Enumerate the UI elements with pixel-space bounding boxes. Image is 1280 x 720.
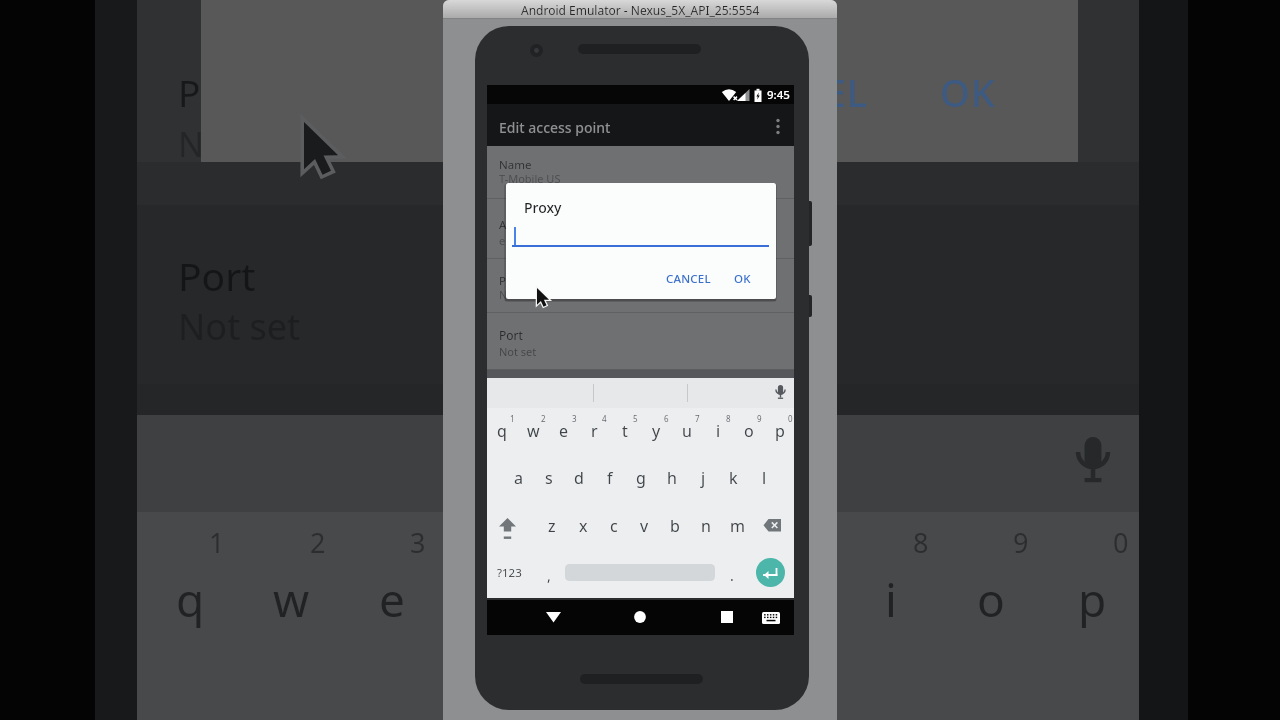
button[interactable] bbox=[545, 610, 562, 625]
staticText: 2 bbox=[541, 413, 546, 424]
staticText: z bbox=[548, 515, 556, 537]
staticText: q bbox=[176, 568, 205, 628]
staticText: CANCEL bbox=[718, 66, 869, 118]
staticText: 5 bbox=[633, 413, 638, 424]
staticText: w bbox=[527, 420, 540, 442]
button[interactable]: f bbox=[595, 461, 625, 495]
button[interactable]: t bbox=[610, 414, 640, 448]
staticText: 8 bbox=[913, 524, 929, 561]
button[interactable]: ?123 bbox=[489, 558, 529, 588]
staticText: 0 bbox=[788, 413, 793, 424]
button[interactable]: u bbox=[672, 414, 702, 448]
staticText: e bbox=[379, 568, 405, 628]
staticText: 9 bbox=[757, 413, 762, 424]
staticText: q bbox=[497, 420, 507, 442]
staticText: 1 bbox=[510, 413, 515, 424]
staticText: 8 bbox=[726, 413, 731, 424]
staticText: Not set bbox=[499, 287, 537, 302]
staticText: p bbox=[775, 420, 785, 442]
staticText: i bbox=[885, 568, 897, 628]
button[interactable] bbox=[772, 384, 789, 403]
staticText: OK bbox=[940, 66, 996, 118]
staticText: CANCEL bbox=[666, 271, 711, 287]
staticText: w bbox=[273, 568, 310, 628]
button[interactable]: l bbox=[749, 461, 779, 495]
button[interactable]: p bbox=[765, 414, 795, 448]
staticText: 6 bbox=[664, 413, 669, 424]
button[interactable] bbox=[487, 199, 794, 258]
staticText: x bbox=[579, 515, 588, 537]
staticText: o bbox=[977, 568, 1005, 628]
button[interactable]: c bbox=[599, 509, 629, 543]
button[interactable]: k bbox=[718, 461, 748, 495]
button[interactable]: i bbox=[703, 414, 733, 448]
button[interactable]: d bbox=[564, 461, 594, 495]
button[interactable]: n bbox=[691, 509, 721, 543]
button[interactable] bbox=[498, 516, 517, 542]
staticText: 1 bbox=[209, 524, 225, 561]
staticText: T-Mobile US bbox=[499, 171, 561, 186]
button[interactable]: y bbox=[641, 414, 671, 448]
button[interactable]: r bbox=[579, 414, 609, 448]
button[interactable]: e bbox=[549, 414, 579, 448]
button[interactable]: b bbox=[660, 509, 690, 543]
button[interactable]: g bbox=[626, 461, 656, 495]
button[interactable]: j bbox=[688, 461, 718, 495]
staticText: Edit access point bbox=[499, 118, 611, 137]
button[interactable]: z bbox=[537, 509, 567, 543]
button[interactable]: a bbox=[503, 461, 533, 495]
staticText: e bbox=[559, 420, 569, 442]
staticText: o bbox=[744, 420, 754, 442]
staticText: . bbox=[730, 566, 734, 585]
button[interactable]: v bbox=[629, 509, 659, 543]
staticText: p bbox=[1078, 568, 1107, 628]
staticText: y bbox=[652, 420, 661, 442]
staticText: 7 bbox=[695, 413, 700, 424]
button[interactable]: CANCEL bbox=[653, 264, 723, 294]
staticText: epc.tmobile.com bbox=[499, 233, 585, 248]
staticText: , bbox=[547, 566, 551, 585]
button[interactable] bbox=[756, 558, 785, 587]
button[interactable] bbox=[487, 146, 794, 199]
staticText: l bbox=[762, 467, 767, 489]
staticText: Proxy bbox=[524, 198, 562, 217]
staticText: k bbox=[729, 467, 738, 489]
staticText: Not set bbox=[178, 302, 301, 351]
staticText: Port bbox=[178, 249, 256, 302]
staticText: Not set bbox=[499, 344, 537, 359]
button[interactable]: s bbox=[534, 461, 564, 495]
staticText: 9 bbox=[1013, 524, 1029, 561]
staticText: d bbox=[574, 467, 584, 489]
button[interactable] bbox=[761, 610, 781, 626]
button[interactable]: . bbox=[722, 560, 742, 590]
staticText: b bbox=[670, 515, 680, 537]
button[interactable]: , bbox=[539, 560, 559, 590]
button[interactable]: m bbox=[722, 509, 752, 543]
button[interactable]: q bbox=[487, 414, 517, 448]
staticText: Port bbox=[499, 327, 523, 343]
button[interactable]: x bbox=[568, 509, 598, 543]
staticText: 0 bbox=[1113, 524, 1129, 561]
button[interactable] bbox=[770, 113, 786, 140]
button[interactable] bbox=[487, 313, 794, 369]
button[interactable]: OK bbox=[722, 264, 762, 294]
staticText: j bbox=[701, 467, 706, 489]
staticText: 2 bbox=[310, 524, 326, 561]
staticText: Name bbox=[499, 157, 532, 173]
staticText: 3 bbox=[410, 524, 426, 561]
staticText: N bbox=[178, 121, 204, 167]
button[interactable]: w bbox=[518, 414, 548, 448]
button[interactable] bbox=[633, 610, 647, 624]
staticText: v bbox=[640, 515, 649, 537]
staticText: r bbox=[591, 420, 598, 442]
button[interactable] bbox=[487, 259, 794, 312]
staticText: f bbox=[607, 467, 613, 489]
button[interactable]: h bbox=[657, 461, 687, 495]
staticText: ?123 bbox=[497, 565, 522, 581]
staticText: m bbox=[730, 515, 745, 537]
button[interactable]: o bbox=[734, 414, 764, 448]
button[interactable] bbox=[763, 518, 782, 533]
